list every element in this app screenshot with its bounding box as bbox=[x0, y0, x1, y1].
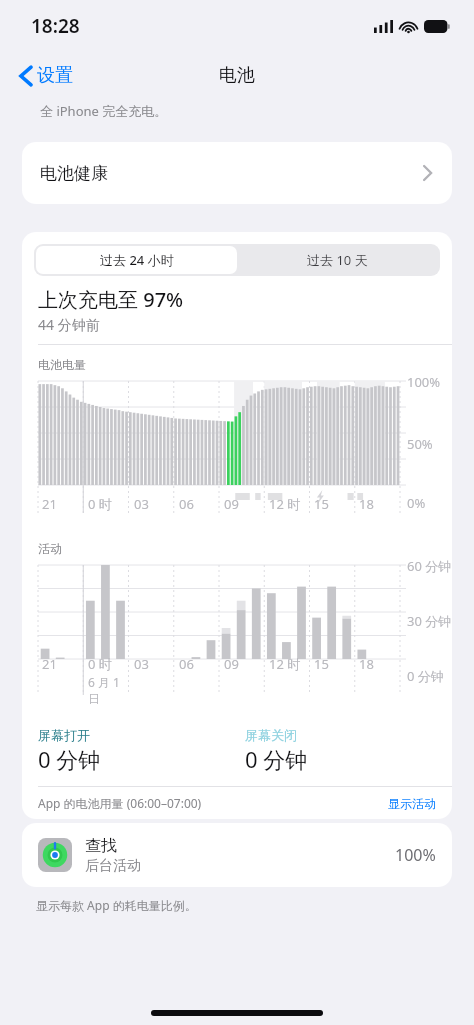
staticText: 21 bbox=[42, 655, 57, 673]
staticText: 44 分钟前 bbox=[38, 315, 100, 334]
staticText: 屏幕打开 bbox=[38, 727, 90, 743]
button[interactable]: 过去 24 小时 bbox=[36, 246, 237, 274]
staticText: 0 分钟 bbox=[38, 744, 101, 774]
staticText: 过去 10 天 bbox=[307, 251, 368, 269]
staticText: 100% bbox=[407, 373, 441, 391]
staticText: 设置 bbox=[37, 64, 73, 87]
staticText: 0 分钟 bbox=[245, 744, 308, 774]
staticText: 电池健康 bbox=[40, 163, 108, 184]
staticText: 过去 24 小时 bbox=[100, 251, 174, 269]
button[interactable]: 显示活动 bbox=[388, 796, 436, 811]
staticText: App 的电池用量 (06:00–07:00) bbox=[38, 795, 388, 811]
staticText: 50% bbox=[407, 435, 433, 453]
staticText: 18 bbox=[359, 655, 374, 673]
staticText: 15 bbox=[314, 495, 329, 513]
staticText: 100% bbox=[395, 844, 436, 866]
staticText: 06 bbox=[179, 655, 194, 673]
staticText: 0% bbox=[407, 494, 426, 512]
staticText: 03 bbox=[134, 655, 149, 673]
button[interactable]: 电池健康 bbox=[22, 142, 452, 204]
staticText: 60 分钟 bbox=[407, 557, 452, 575]
staticText: 6 月 1 日 bbox=[88, 674, 130, 707]
staticText: 18 bbox=[359, 495, 374, 513]
staticText: 15 bbox=[314, 655, 329, 673]
staticText: 09 bbox=[224, 655, 239, 673]
staticText: 21 bbox=[42, 495, 57, 513]
staticText: 电池 bbox=[219, 64, 255, 87]
staticText: 后台活动 bbox=[85, 857, 141, 875]
staticText: 查找 bbox=[85, 836, 117, 856]
staticText: 18:28 bbox=[31, 13, 80, 39]
staticText: 0 时 bbox=[88, 495, 112, 513]
staticText: 12 时 bbox=[269, 495, 301, 513]
staticText: 0 时 bbox=[88, 655, 112, 673]
button[interactable]: 查找 bbox=[22, 823, 452, 887]
staticText: 12 时 bbox=[269, 655, 301, 673]
button[interactable]: 过去 10 天 bbox=[237, 246, 438, 274]
button[interactable]: 设置 bbox=[14, 60, 79, 91]
staticText: 30 分钟 bbox=[407, 612, 452, 630]
staticText: 全 iPhone 完全充电。 bbox=[40, 102, 168, 120]
staticText: 屏幕关闭 bbox=[245, 727, 297, 743]
staticText: 0 分钟 bbox=[407, 667, 444, 685]
staticText: 03 bbox=[134, 495, 149, 513]
staticText: 活动 bbox=[38, 541, 62, 556]
staticText: 09 bbox=[224, 495, 239, 513]
staticText: 上次充电至 97% bbox=[38, 286, 184, 313]
staticText: 电池电量 bbox=[38, 357, 86, 372]
staticText: 显示每款 App 的耗电量比例。 bbox=[36, 897, 197, 913]
staticText: 06 bbox=[179, 495, 194, 513]
staticText: 显示活动 bbox=[388, 796, 436, 811]
